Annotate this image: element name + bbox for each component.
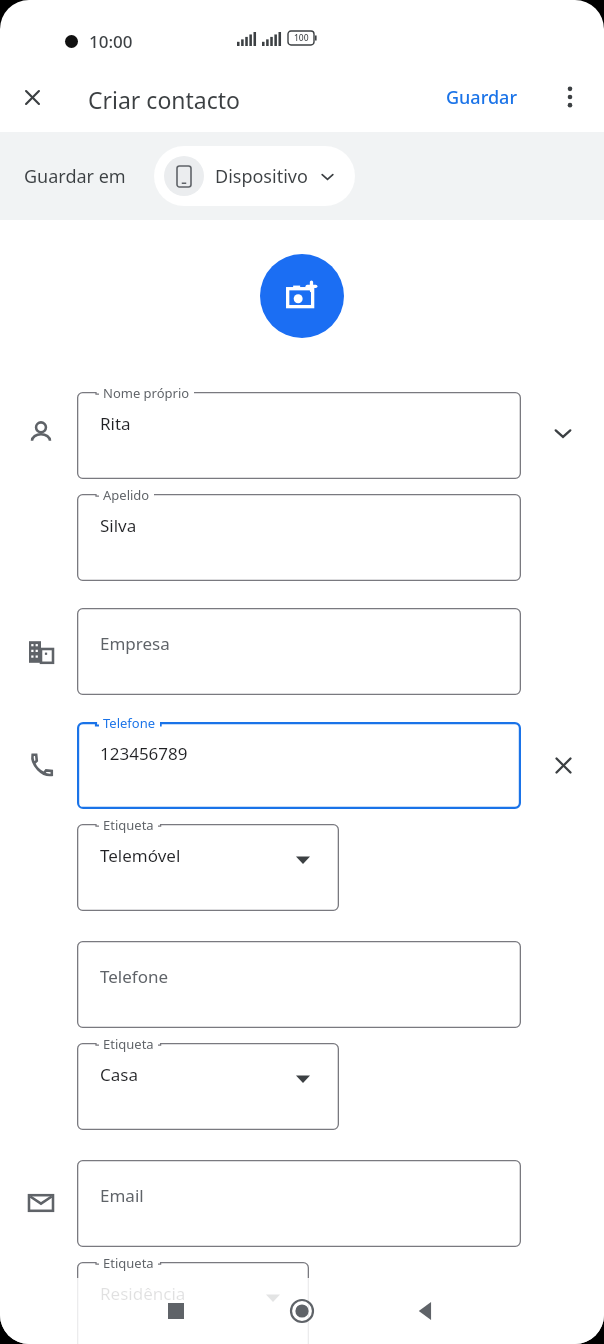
button[interactable]: Nome próprio [77, 392, 521, 479]
staticText: Criar contacto [88, 84, 240, 115]
staticText: Residência [100, 1282, 186, 1305]
staticText: Empresa [100, 632, 170, 655]
staticText: 123456789 [100, 742, 188, 765]
staticText: Guardar [446, 85, 517, 110]
staticText: Casa [100, 1063, 138, 1086]
staticText: Etiqueta [103, 1035, 154, 1053]
staticText: Apelido [103, 486, 150, 504]
staticText: Etiqueta [103, 816, 154, 834]
staticText: 10:00 [89, 30, 133, 53]
button[interactable]: Fechar [8, 73, 56, 121]
staticText: Etiqueta [103, 1254, 154, 1272]
button[interactable]: Voltar [398, 1283, 454, 1339]
button[interactable]: Guardar [434, 76, 529, 119]
button[interactable]: Apelido [77, 494, 521, 581]
staticText: Guardar em [24, 164, 126, 189]
button[interactable]: Mais opções [546, 73, 594, 121]
button[interactable]: Telefone [77, 722, 521, 809]
button[interactable]: Empresa [77, 608, 521, 695]
button[interactable]: Telefone [77, 941, 521, 1028]
button[interactable]: Limpar telefone [541, 743, 585, 787]
staticText: Email [100, 1184, 144, 1207]
button[interactable]: Recentes [148, 1283, 204, 1339]
staticText: Telefone [100, 965, 169, 988]
staticText: Rita [100, 412, 131, 435]
staticText: Silva [100, 514, 137, 537]
button[interactable]: Etiqueta [77, 1043, 339, 1130]
staticText: Dispositivo [215, 164, 308, 189]
staticText: Telefone [103, 714, 156, 732]
staticText: Nome próprio [103, 384, 190, 402]
button[interactable]: Email [77, 1160, 521, 1247]
button[interactable]: Mais campos de nome [541, 411, 585, 455]
staticText: Telemóvel [100, 844, 181, 867]
button[interactable]: Adicionar foto [260, 254, 344, 338]
button[interactable]: Etiqueta [77, 1262, 309, 1344]
staticText: 100 [294, 32, 309, 44]
button[interactable]: Início [274, 1283, 330, 1339]
button[interactable]: Etiqueta [77, 824, 339, 911]
button[interactable]: Dispositivo [154, 146, 355, 206]
